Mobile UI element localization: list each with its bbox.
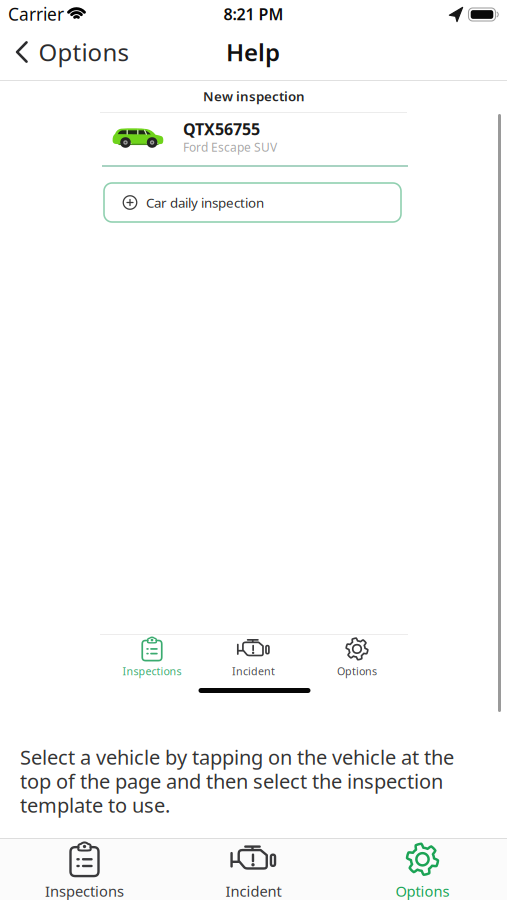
button[interactable]: Incident [225,842,281,900]
staticText: QTX56755 [183,118,260,140]
staticText: Carrier [8,2,64,25]
button[interactable]: Options [337,637,377,678]
button[interactable]: Car daily inspection [104,183,401,222]
staticText: top of the page and then select the insp… [20,768,443,794]
button[interactable]: Incident [232,637,275,678]
button[interactable]: Inspections [122,637,181,678]
staticText: Inspections [45,881,124,900]
staticText: Help [226,36,280,68]
staticText: 8:21 PM [223,3,283,25]
staticText: Car daily inspection [146,194,264,211]
button[interactable]: Inspections [45,842,124,900]
button[interactable]: QTX56755 [100,117,408,159]
staticText: Ford Escape SUV [183,139,277,155]
staticText: New inspection [203,87,305,105]
staticText: Options [337,664,377,678]
staticText: Inspections [122,664,181,678]
button[interactable]: Options [395,842,449,900]
staticText: Options [395,881,449,900]
staticText: Incident [225,881,281,900]
staticText: template to use. [20,792,170,818]
button[interactable]: Options [15,36,134,68]
staticText: Select a vehicle by tapping on the vehic… [20,744,454,770]
staticText: Incident [232,664,275,678]
staticText: Options [38,36,128,68]
